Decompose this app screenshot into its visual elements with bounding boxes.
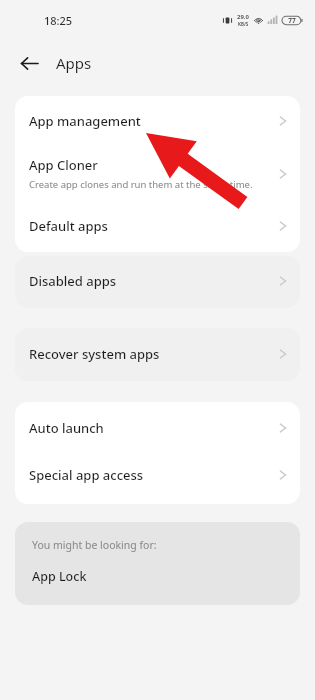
button[interactable]: Recover system apps (15, 328, 300, 381)
staticText: App management (29, 112, 141, 130)
staticText: Auto launch (29, 419, 104, 437)
button[interactable]: App Cloner (15, 146, 300, 203)
button[interactable]: You might be looking for: (15, 522, 300, 605)
staticText: App Lock (32, 568, 87, 585)
button[interactable]: App management (15, 96, 300, 146)
staticText: Create app clones and run them at the sa… (29, 178, 253, 191)
staticText: KB/S (238, 21, 249, 27)
button[interactable]: Default apps (15, 203, 300, 252)
button[interactable]: Back (16, 50, 42, 76)
staticText: Special app access (29, 466, 144, 484)
staticText: 18:25 (44, 13, 73, 28)
staticText: Apps (56, 53, 92, 73)
staticText: Recover system apps (29, 345, 160, 363)
staticText: 29.0 (237, 13, 249, 21)
staticText: You might be looking for: (32, 538, 157, 552)
staticText: 77 (288, 16, 296, 25)
button[interactable]: Special app access (15, 454, 300, 504)
button[interactable]: Auto launch (15, 402, 300, 454)
staticText: Disabled apps (29, 272, 117, 290)
staticText: Default apps (29, 217, 108, 235)
button[interactable]: Disabled apps (15, 256, 300, 308)
staticText: App Cloner (29, 156, 98, 174)
